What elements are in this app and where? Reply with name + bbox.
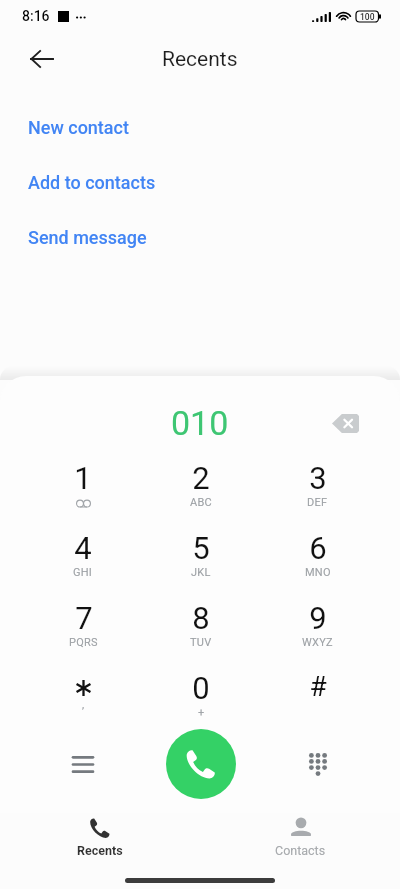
- staticText: 3: [309, 460, 327, 496]
- staticText: New contact: [28, 117, 129, 138]
- staticText: 2: [192, 460, 210, 496]
- staticText: Recents: [77, 843, 123, 858]
- staticText: PQRS: [69, 636, 98, 649]
- button[interactable]: 3: [259, 446, 376, 516]
- staticText: GHI: [73, 566, 93, 579]
- button[interactable]: 7: [24, 586, 142, 656]
- staticText: ,: [82, 698, 85, 711]
- button[interactable]: Backspace: [323, 401, 367, 445]
- button[interactable]: 0: [142, 656, 259, 726]
- staticText: 7: [75, 600, 93, 636]
- button[interactable]: 4: [24, 516, 142, 586]
- staticText: 1: [74, 460, 92, 496]
- staticText: 0: [192, 670, 210, 706]
- button[interactable]: ,: [24, 656, 142, 726]
- button[interactable]: Contacts: [200, 813, 400, 869]
- button[interactable]: 6: [259, 516, 376, 586]
- button[interactable]: New contact: [0, 100, 400, 155]
- button[interactable]: 5: [142, 516, 259, 586]
- staticText: +: [198, 706, 205, 719]
- staticText: 9: [309, 600, 327, 636]
- staticText: ABC: [190, 496, 212, 509]
- button[interactable]: Back: [20, 37, 64, 81]
- button[interactable]: 8: [142, 586, 259, 656]
- staticText: DEF: [307, 496, 328, 509]
- staticText: Add to contacts: [28, 172, 156, 193]
- button[interactable]: Dialpad: [259, 721, 376, 807]
- button[interactable]: 1: [24, 446, 142, 516]
- button[interactable]: Send message: [0, 210, 400, 265]
- button[interactable]: Options: [24, 721, 142, 807]
- staticText: TUV: [190, 636, 212, 649]
- staticText: 5: [192, 530, 210, 566]
- staticText: 4: [74, 530, 92, 566]
- staticText: MNO: [305, 566, 331, 579]
- staticText: Contacts: [275, 843, 326, 858]
- staticText: 8: [192, 600, 210, 636]
- button[interactable]: Call: [166, 729, 236, 799]
- staticText: #: [309, 670, 327, 703]
- staticText: 8:16: [22, 8, 50, 24]
- button[interactable]: #: [259, 656, 376, 726]
- staticText: 010: [171, 403, 229, 443]
- staticText: 6: [309, 530, 327, 566]
- button[interactable]: Add to contacts: [0, 155, 400, 210]
- staticText: Send message: [28, 227, 147, 248]
- staticText: JKL: [191, 566, 211, 579]
- button[interactable]: 9: [259, 586, 376, 656]
- staticText: Recents: [162, 47, 238, 72]
- staticText: WXYZ: [302, 636, 333, 649]
- staticText: 100: [360, 12, 375, 22]
- button[interactable]: 2: [142, 446, 259, 516]
- button[interactable]: Recents: [0, 813, 200, 869]
